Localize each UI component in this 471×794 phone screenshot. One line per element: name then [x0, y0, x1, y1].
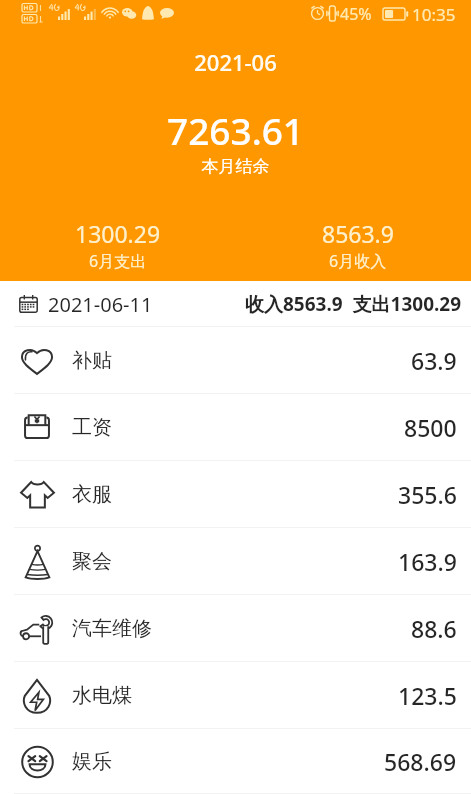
staticText: 10:35: [412, 3, 456, 26]
staticText: 本月结余: [0, 156, 471, 177]
button[interactable]: 补贴: [0, 327, 471, 394]
button[interactable]: 衣服: [0, 461, 471, 528]
staticText: 8563.9: [322, 218, 394, 249]
staticText: 水电煤: [72, 683, 132, 708]
staticText: 355.6: [398, 479, 457, 510]
staticText: 6月支出: [89, 250, 147, 272]
staticText: 123.5: [398, 680, 457, 711]
staticText: 7263.61: [0, 105, 471, 155]
button[interactable]: 聚会: [0, 528, 471, 595]
staticText: 工资: [72, 415, 112, 440]
staticText: 1300.29: [75, 218, 161, 249]
staticText: 568.69: [384, 746, 457, 777]
button[interactable]: 水电煤: [0, 662, 471, 729]
staticText: 聚会: [72, 549, 112, 574]
staticText: 63.9: [411, 345, 457, 376]
staticText: 衣服: [72, 482, 112, 507]
staticText: 45%: [340, 3, 372, 25]
staticText: 娱乐: [72, 749, 112, 774]
staticText: 补贴: [72, 348, 112, 373]
staticText: 2021-06-11: [48, 291, 153, 318]
staticText: 汽车维修: [72, 616, 152, 641]
staticText: 2021-06: [0, 47, 471, 77]
button[interactable]: 汽车维修: [0, 595, 471, 662]
staticText: 8500: [404, 412, 457, 443]
button[interactable]: 娱乐: [0, 729, 471, 794]
staticText: 163.9: [398, 546, 457, 577]
staticText: 收入8563.9 支出1300.29: [245, 291, 462, 317]
button[interactable]: 2021-06-11: [0, 281, 471, 327]
staticText: 88.6: [411, 613, 457, 644]
staticText: 6月收入: [329, 250, 387, 272]
button[interactable]: 工资: [0, 394, 471, 461]
